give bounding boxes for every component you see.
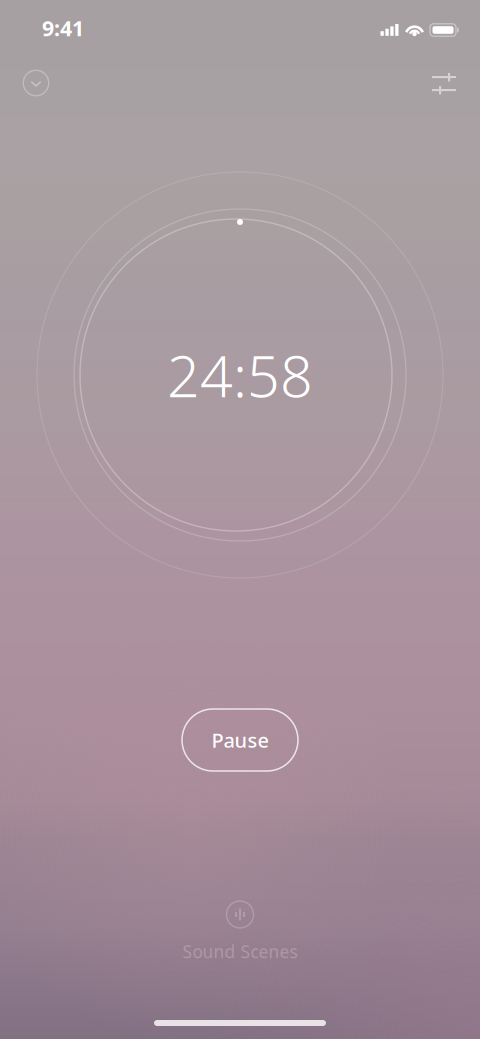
button[interactable]: Pause <box>182 709 298 771</box>
button[interactable]: Sound Scenes <box>182 901 297 963</box>
button[interactable]: Close <box>14 61 58 105</box>
staticText: 9:41 <box>42 14 84 42</box>
staticText: 24:58 <box>167 337 313 413</box>
staticText: Sound Scenes <box>182 940 297 963</box>
staticText: Pause <box>211 727 268 753</box>
button[interactable]: Settings <box>422 62 466 106</box>
